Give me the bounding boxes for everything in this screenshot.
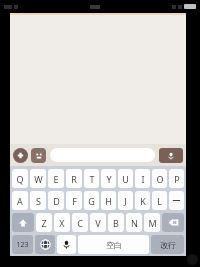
button[interactable]: G bbox=[84, 191, 99, 210]
button[interactable]: C bbox=[72, 213, 88, 232]
button[interactable]: Y bbox=[101, 169, 116, 188]
staticText: G bbox=[88, 195, 95, 207]
button[interactable]: L bbox=[152, 191, 167, 210]
button[interactable]: Switch language bbox=[35, 235, 55, 254]
button[interactable]: F bbox=[66, 191, 82, 210]
staticText: U bbox=[122, 173, 129, 185]
button[interactable]: Voice message bbox=[159, 148, 183, 163]
button[interactable]: S bbox=[30, 191, 46, 210]
button[interactable]: A bbox=[12, 191, 28, 210]
staticText: L bbox=[157, 195, 162, 207]
button[interactable]: Q bbox=[12, 169, 28, 188]
staticText: V bbox=[95, 217, 101, 229]
other: Home bbox=[187, 254, 198, 265]
staticText: 空白 bbox=[106, 240, 122, 250]
staticText: B bbox=[113, 217, 119, 229]
staticText: N bbox=[131, 217, 138, 229]
button[interactable]: Dictation bbox=[57, 235, 76, 254]
button[interactable]: Shift bbox=[12, 213, 34, 232]
staticText: Q bbox=[16, 173, 24, 185]
button[interactable]: O bbox=[152, 169, 167, 188]
staticText: T bbox=[89, 173, 95, 185]
staticText: A bbox=[17, 195, 23, 207]
button[interactable]: J bbox=[118, 191, 133, 210]
staticText: C bbox=[77, 217, 83, 229]
button[interactable]: W bbox=[30, 169, 46, 188]
staticText: I bbox=[141, 173, 145, 185]
button[interactable]: B bbox=[108, 213, 124, 232]
staticText: 改行 bbox=[160, 240, 176, 250]
button[interactable] bbox=[50, 148, 155, 162]
button[interactable]: E bbox=[48, 169, 64, 188]
button[interactable]: P bbox=[169, 169, 184, 188]
staticText: Z bbox=[41, 217, 47, 229]
button[interactable]: ー bbox=[169, 191, 184, 210]
button[interactable]: 123 bbox=[12, 235, 33, 254]
button[interactable]: 改行 bbox=[151, 235, 184, 254]
button[interactable]: R bbox=[66, 169, 82, 188]
staticText: O bbox=[156, 173, 164, 185]
staticText: R bbox=[71, 173, 77, 185]
staticText: ー bbox=[172, 195, 181, 206]
button[interactable]: K bbox=[135, 191, 150, 210]
button[interactable]: Emoji bbox=[31, 148, 46, 163]
button[interactable]: H bbox=[101, 191, 116, 210]
button[interactable]: M bbox=[144, 213, 160, 232]
button[interactable]: V bbox=[90, 213, 106, 232]
button[interactable]: I bbox=[135, 169, 150, 188]
staticText: D bbox=[53, 195, 60, 207]
button[interactable]: Add attachment bbox=[13, 148, 28, 163]
staticText: K bbox=[140, 195, 146, 207]
staticText: S bbox=[36, 195, 41, 207]
staticText: P bbox=[174, 173, 180, 185]
staticText: F bbox=[72, 195, 77, 207]
staticText: J bbox=[124, 195, 127, 207]
staticText: W bbox=[34, 173, 43, 185]
button[interactable]: Z bbox=[36, 213, 52, 232]
staticText: 123 bbox=[16, 240, 29, 250]
button[interactable]: D bbox=[48, 191, 64, 210]
button[interactable]: T bbox=[84, 169, 99, 188]
button[interactable]: 空白 bbox=[78, 235, 149, 254]
staticText: X bbox=[59, 217, 65, 229]
button[interactable]: X bbox=[54, 213, 70, 232]
staticText: E bbox=[53, 173, 59, 185]
staticText: H bbox=[105, 195, 112, 207]
staticText: M bbox=[148, 217, 157, 229]
staticText: Y bbox=[106, 173, 112, 185]
button[interactable]: Backspace bbox=[162, 213, 184, 232]
button[interactable]: N bbox=[126, 213, 142, 232]
button[interactable]: U bbox=[118, 169, 133, 188]
